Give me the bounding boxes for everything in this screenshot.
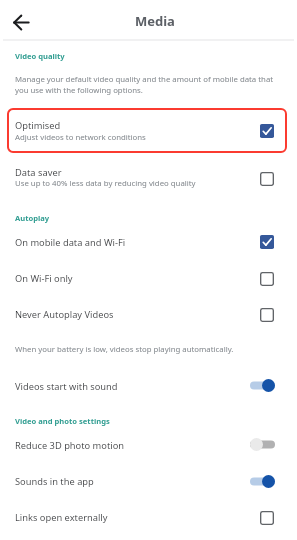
staticText: Autoplay: [15, 213, 50, 223]
button[interactable]: [7, 265, 290, 291]
staticText: Manage your default video quality and th…: [15, 74, 295, 96]
button[interactable]: Navigate up: [8, 9, 34, 35]
button[interactable]: Not selected: [253, 504, 280, 531]
button[interactable]: [7, 432, 290, 458]
staticText: Reduce 3D photo motion: [15, 439, 125, 452]
staticText: Data saver: [15, 166, 62, 179]
button[interactable]: [7, 109, 290, 152]
staticText: Use up to 40% less data by reducing vide…: [15, 178, 196, 189]
staticText: Videos start with sound: [15, 380, 118, 393]
button[interactable]: Off: [245, 433, 280, 456]
staticText: Links open externally: [15, 511, 108, 524]
staticText: Never Autoplay Videos: [15, 308, 114, 321]
button[interactable]: [7, 301, 290, 327]
button[interactable]: Selected: [253, 228, 280, 255]
button[interactable]: On: [245, 374, 280, 397]
button[interactable]: [7, 504, 290, 530]
button[interactable]: Not selected: [253, 301, 280, 328]
button[interactable]: Not selected: [253, 165, 280, 192]
button[interactable]: [7, 373, 290, 399]
staticText: Optimised: [15, 119, 61, 132]
button[interactable]: [7, 158, 290, 198]
staticText: Video quality: [15, 51, 65, 61]
button[interactable]: On: [245, 470, 280, 493]
button[interactable]: [7, 229, 290, 255]
staticText: Video and photo settings: [15, 416, 110, 426]
staticText: When your battery is low, videos stop pl…: [15, 344, 234, 355]
staticText: On Wi-Fi only: [15, 272, 73, 285]
staticText: Media: [135, 12, 175, 30]
staticText: On mobile data and Wi-Fi: [15, 236, 126, 249]
button[interactable]: Not selected: [253, 265, 280, 292]
staticText: Adjust videos to network conditions: [15, 132, 146, 143]
button[interactable]: [7, 468, 290, 494]
button[interactable]: Selected: [253, 117, 280, 144]
staticText: Sounds in the app: [15, 475, 94, 488]
